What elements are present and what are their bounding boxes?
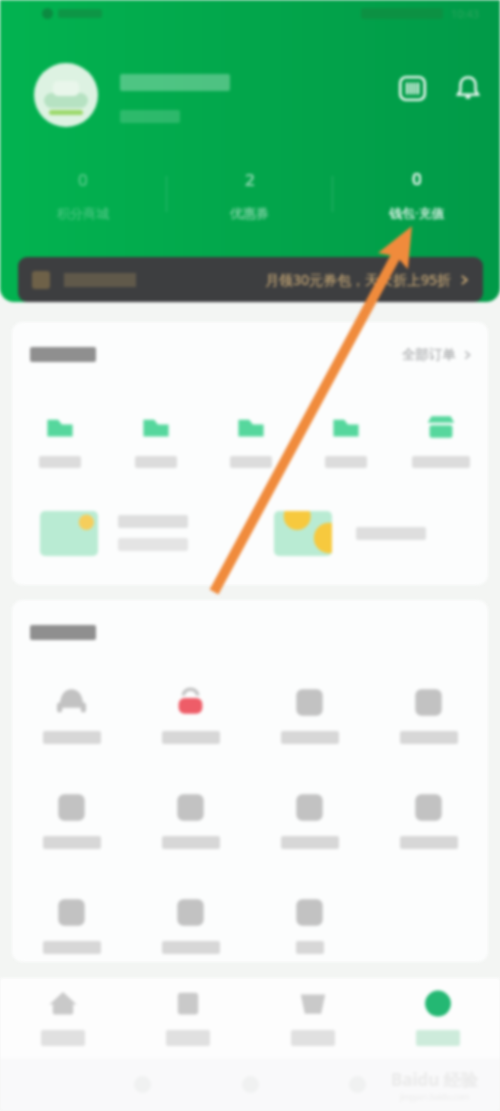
- button[interactable]: Mine: [375, 978, 500, 1058]
- button[interactable]: [12, 896, 131, 954]
- button[interactable]: Home: [0, 978, 125, 1058]
- button[interactable]: [12, 791, 131, 849]
- button[interactable]: [131, 791, 250, 849]
- button[interactable]: [12, 412, 108, 468]
- button[interactable]: Membership card: [394, 70, 430, 106]
- staticText: 月领30元券包，天天折上95折: [265, 270, 452, 289]
- button[interactable]: [369, 686, 488, 744]
- button[interactable]: 2: [166, 154, 333, 234]
- button[interactable]: 月领30元券包，天天折上95折: [18, 257, 483, 302]
- button[interactable]: [298, 412, 393, 468]
- button[interactable]: 全部订单: [402, 346, 472, 363]
- staticText: Baidu 经验: [391, 1068, 478, 1091]
- staticText: 优惠券: [230, 205, 269, 221]
- button[interactable]: [108, 412, 203, 468]
- button[interactable]: Cart: [250, 978, 375, 1058]
- button[interactable]: [12, 686, 131, 744]
- button[interactable]: Notifications: [450, 70, 486, 106]
- button[interactable]: 0: [333, 154, 500, 234]
- button[interactable]: [369, 791, 488, 849]
- button[interactable]: [393, 412, 488, 468]
- staticText: 0: [412, 167, 422, 190]
- staticText: 2: [245, 168, 255, 191]
- staticText: 钱包·充值: [389, 204, 445, 222]
- button[interactable]: [250, 896, 369, 954]
- staticText: 10:43: [451, 6, 480, 21]
- staticText: 0: [78, 168, 88, 191]
- button[interactable]: [131, 686, 250, 744]
- staticText: 全部订单: [402, 346, 456, 363]
- button[interactable]: 0: [0, 154, 166, 234]
- button[interactable]: Category: [125, 978, 250, 1058]
- button[interactable]: [131, 896, 250, 954]
- button[interactable]: [12, 508, 250, 558]
- button[interactable]: [250, 686, 369, 744]
- button[interactable]: [250, 508, 488, 558]
- button[interactable]: [250, 791, 369, 849]
- staticText: 积分商城: [57, 205, 109, 221]
- button[interactable]: [203, 412, 298, 468]
